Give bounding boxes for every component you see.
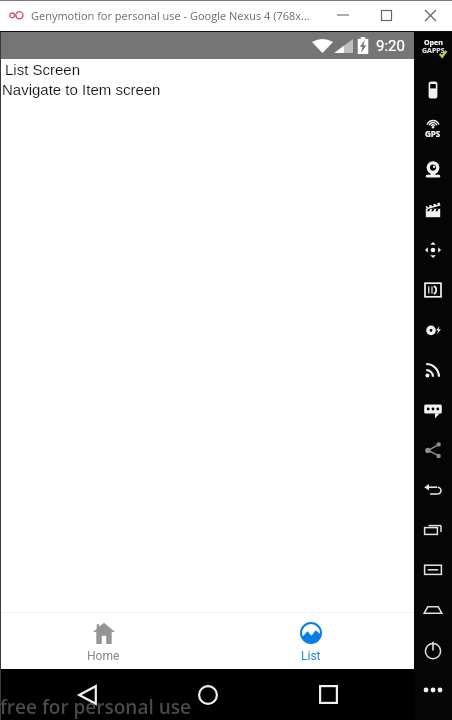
button[interactable]: GPS: [414, 110, 452, 150]
button[interactable]: OpenGApps: [414, 35, 452, 61]
button[interactable]: Back: [414, 470, 452, 510]
button[interactable]: Camera: [414, 150, 452, 190]
staticText: 9:20: [376, 37, 405, 55]
staticText: Home: [87, 649, 120, 663]
staticText: List Screen: [5, 61, 81, 78]
button[interactable]: Navigate to Item screen: [2, 81, 161, 98]
button[interactable]: Network: [414, 350, 452, 390]
staticText: GPS: [425, 128, 441, 139]
staticText: Genymotion for personal use - Google Nex…: [31, 8, 310, 23]
button[interactable]: Rotation: [414, 230, 452, 270]
button[interactable]: Identifiers: [414, 270, 452, 310]
button[interactable]: Recents: [300, 669, 356, 720]
button[interactable]: List: [207, 613, 414, 669]
button[interactable]: Menu: [414, 550, 452, 590]
button[interactable]: Disk IO: [414, 310, 452, 350]
button[interactable]: Home: [0, 613, 207, 669]
button[interactable]: Share: [414, 430, 452, 470]
staticText: GAPPS: [422, 46, 445, 56]
staticText: Open: [424, 38, 443, 48]
button[interactable]: Maximize: [365, 0, 408, 30]
button[interactable]: Home: [180, 669, 236, 720]
button[interactable]: Recents: [414, 510, 452, 550]
staticText: free for personal use: [0, 694, 191, 720]
button[interactable]: SMS: [414, 390, 452, 430]
button[interactable]: Home: [414, 590, 452, 630]
button[interactable]: Minimize: [320, 0, 365, 30]
button[interactable]: Close: [409, 0, 452, 30]
button[interactable]: Power: [414, 630, 452, 670]
button[interactable]: Back: [59, 669, 115, 720]
button[interactable]: Screencast: [414, 190, 452, 230]
staticText: List: [301, 649, 321, 663]
button[interactable]: More: [414, 670, 452, 710]
button[interactable]: Battery: [414, 70, 452, 110]
staticText: Navigate to Item screen: [2, 81, 161, 98]
